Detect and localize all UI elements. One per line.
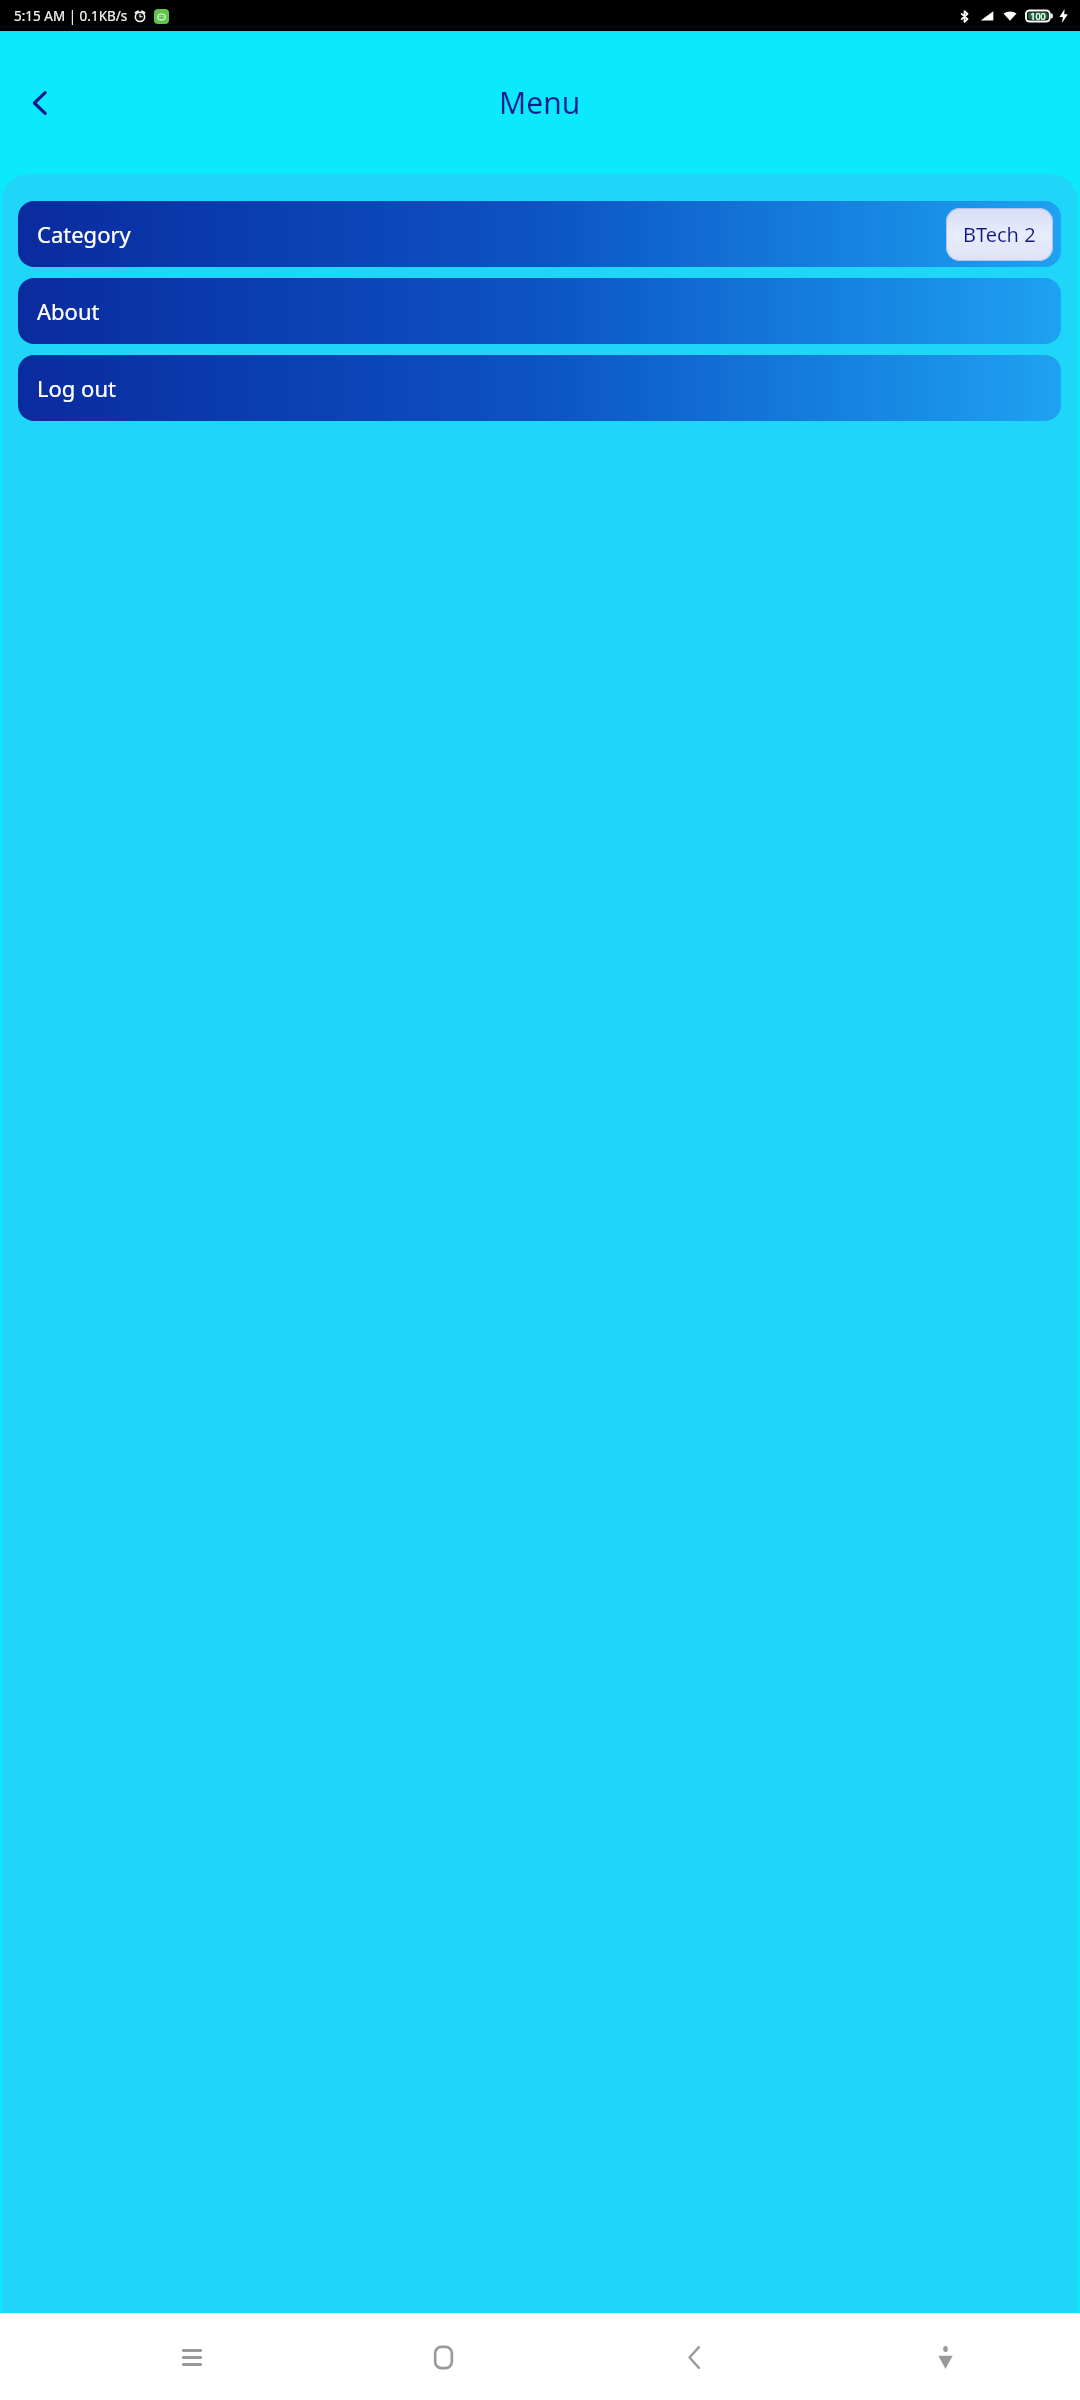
button[interactable]: Back	[12, 75, 68, 131]
button[interactable]: Hide keyboard	[917, 2329, 973, 2385]
staticText: Category	[37, 219, 131, 249]
button[interactable]: Home	[415, 2329, 471, 2385]
button[interactable]: BTech 2	[946, 208, 1053, 261]
staticText: BTech 2	[963, 221, 1036, 248]
button[interactable]: Back	[666, 2329, 722, 2385]
button[interactable]: About	[18, 278, 1061, 344]
button[interactable]: Recents	[164, 2329, 220, 2385]
button[interactable]: Category	[18, 201, 1061, 267]
staticText: About	[37, 296, 100, 326]
button[interactable]: Log out	[18, 355, 1061, 421]
staticText: 100	[1026, 10, 1050, 22]
staticText: Log out	[37, 373, 116, 403]
staticText: Menu	[499, 82, 581, 123]
staticText: 5:15 AM | 0.1KB/s	[14, 7, 128, 25]
